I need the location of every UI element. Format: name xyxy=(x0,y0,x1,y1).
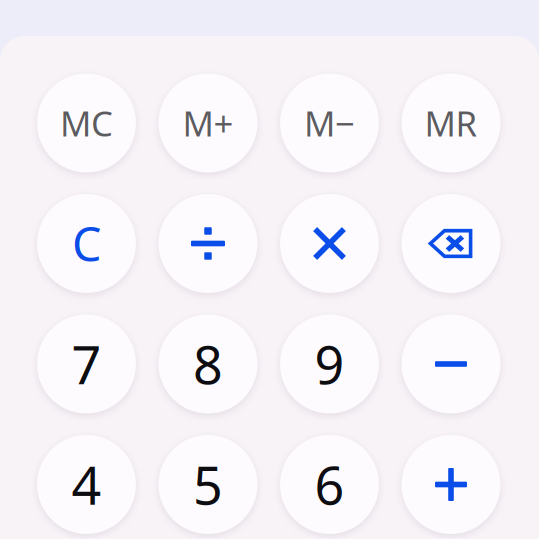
button[interactable]: C xyxy=(37,194,136,293)
button[interactable]: MR xyxy=(401,73,500,172)
button[interactable]: 5 xyxy=(158,435,257,534)
staticText: 8 xyxy=(193,329,223,399)
staticText: 9 xyxy=(314,329,344,399)
staticText: MR xyxy=(424,100,477,146)
staticText: 4 xyxy=(71,450,101,519)
button[interactable]: 6 xyxy=(280,435,379,534)
button[interactable]: 9 xyxy=(280,314,379,413)
button[interactable]: 4 xyxy=(37,435,136,534)
button[interactable]: MC xyxy=(37,73,136,172)
button[interactable]: M+ xyxy=(158,73,257,172)
staticText: 6 xyxy=(314,450,344,519)
staticText: 5 xyxy=(193,450,223,519)
button[interactable]: Backspace xyxy=(401,194,500,293)
button[interactable]: 7 xyxy=(37,314,136,413)
button[interactable]: M− xyxy=(280,73,379,172)
button[interactable]: Minus xyxy=(401,314,500,413)
button[interactable]: 8 xyxy=(158,314,257,413)
staticText: M+ xyxy=(182,100,233,146)
staticText: 7 xyxy=(71,329,101,399)
staticText: MC xyxy=(60,100,113,146)
staticText: C xyxy=(72,212,101,274)
staticText: M− xyxy=(304,100,355,146)
button[interactable]: Plus xyxy=(401,435,500,534)
button[interactable]: Multiply xyxy=(280,194,379,293)
button[interactable]: Divide xyxy=(158,194,257,293)
